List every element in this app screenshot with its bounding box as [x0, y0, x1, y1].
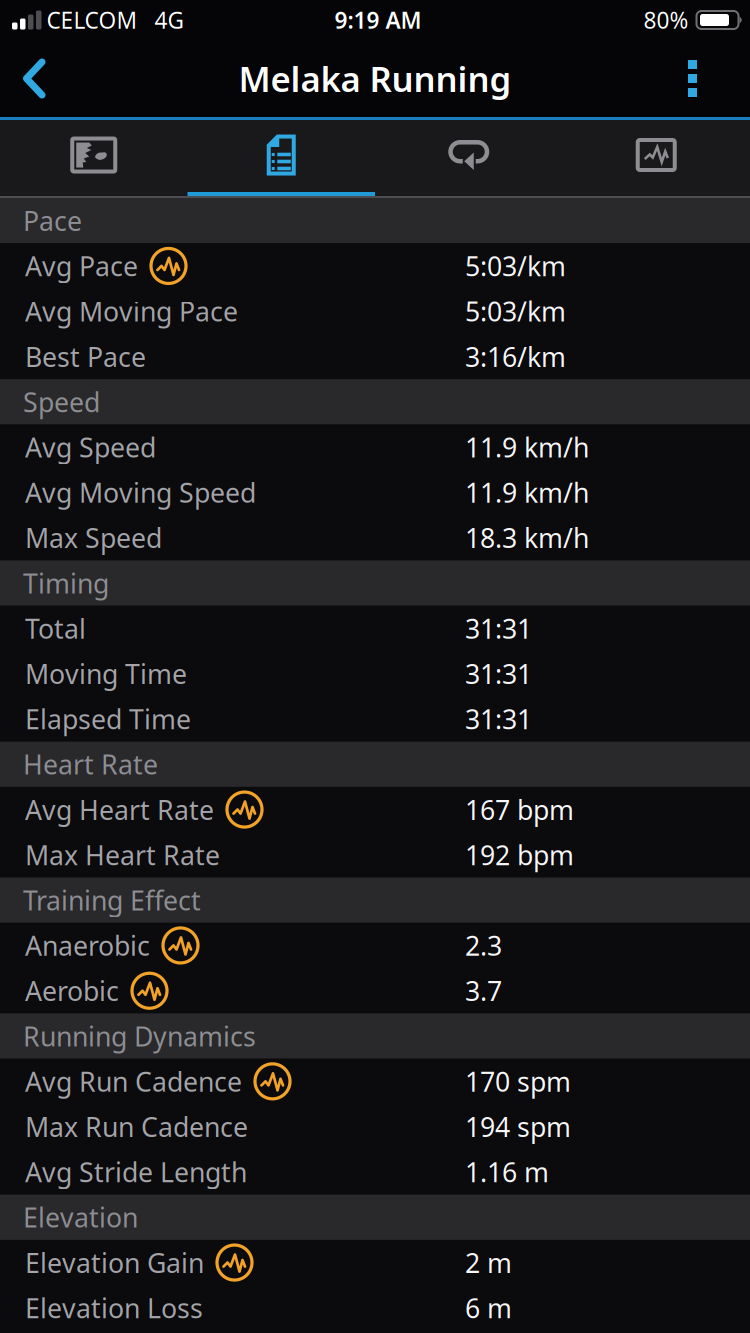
- staticText: 192 bpm: [465, 837, 574, 872]
- staticText: CELCOM: [46, 5, 137, 35]
- staticText: 80%: [643, 5, 688, 35]
- staticText: 5:03/km: [465, 248, 566, 284]
- staticText: Avg Moving Speed: [25, 475, 256, 510]
- staticText: 167 bpm: [465, 792, 574, 827]
- staticText: 4G: [154, 5, 184, 35]
- staticText: Heart Rate: [23, 746, 158, 782]
- button[interactable]: Anaerobic: [0, 923, 750, 968]
- staticText: 11.9 km/h: [465, 429, 589, 465]
- staticText: Elevation: [23, 1199, 138, 1235]
- staticText: 1.16 m: [465, 1154, 549, 1190]
- staticText: 18.3 km/h: [465, 520, 589, 555]
- staticText: 5:03/km: [465, 293, 566, 329]
- button[interactable]: Charts: [562, 120, 750, 196]
- button[interactable]: Elevation Gain: [0, 1240, 750, 1285]
- staticText: 2 m: [465, 1245, 512, 1280]
- staticText: 11.9 km/h: [465, 475, 589, 510]
- staticText: 31:31: [465, 611, 532, 646]
- staticText: Total: [25, 611, 86, 646]
- button[interactable]: Laps: [375, 120, 562, 196]
- button[interactable]: Back: [0, 40, 46, 116]
- button[interactable]: Avg Pace: [0, 243, 750, 289]
- staticText: Moving Time: [25, 656, 187, 691]
- staticText: Melaka Running: [238, 55, 511, 101]
- staticText: Elevation Loss: [25, 1290, 203, 1325]
- staticText: Aerobic: [25, 973, 119, 1008]
- staticText: Avg Run Cadence: [25, 1064, 242, 1099]
- staticText: Max Heart Rate: [25, 837, 220, 872]
- staticText: Avg Stride Length: [25, 1154, 247, 1190]
- staticText: 3:16/km: [465, 339, 566, 374]
- staticText: 31:31: [465, 701, 532, 737]
- staticText: 194 spm: [465, 1109, 571, 1144]
- staticText: Anaerobic: [25, 928, 150, 963]
- staticText: Elapsed Time: [25, 701, 191, 737]
- staticText: 31:31: [465, 656, 532, 691]
- button[interactable]: Details: [187, 120, 375, 196]
- staticText: 9:19 AM: [334, 5, 421, 35]
- staticText: Elevation Gain: [25, 1245, 204, 1280]
- button[interactable]: Aerobic: [0, 968, 750, 1013]
- staticText: 3.7: [465, 973, 502, 1008]
- staticText: Pace: [23, 203, 82, 238]
- staticText: 2.3: [465, 928, 502, 963]
- staticText: Avg Speed: [25, 429, 156, 465]
- button[interactable]: More options: [668, 40, 750, 117]
- button[interactable]: Map: [0, 120, 187, 196]
- staticText: Running Dynamics: [23, 1018, 256, 1054]
- button[interactable]: Avg Run Cadence: [0, 1059, 750, 1104]
- button[interactable]: Avg Heart Rate: [0, 787, 750, 832]
- staticText: Avg Moving Pace: [25, 293, 238, 329]
- staticText: Max Speed: [25, 520, 162, 555]
- staticText: Best Pace: [25, 339, 146, 374]
- staticText: 170 spm: [465, 1064, 571, 1099]
- staticText: Speed: [23, 384, 100, 419]
- staticText: Timing: [23, 565, 109, 601]
- staticText: Max Run Cadence: [25, 1109, 248, 1144]
- staticText: Avg Pace: [25, 248, 138, 284]
- staticText: 6 m: [465, 1290, 512, 1325]
- staticText: Avg Heart Rate: [25, 792, 214, 827]
- staticText: Training Effect: [23, 882, 201, 918]
